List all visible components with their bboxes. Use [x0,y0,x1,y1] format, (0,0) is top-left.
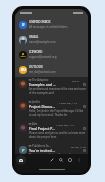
button[interactable]: Jenifer [15,99,88,121]
button[interactable]: Edit [48,156,55,163]
button[interactable]: P [15,143,88,165]
staticText: 4 days ago, 11:5 [56,123,75,126]
staticText: DU [21,68,26,72]
staticText: Please come and join us and let us know … [29,131,86,138]
staticText: All messages in unified folders [29,25,68,29]
staticText: Publishers Inv-A [32,144,51,148]
staticText: An architectural overview of the new and… [29,87,86,94]
staticText: Jenifer [32,100,41,104]
staticText: P [22,148,25,153]
staticText: OUTLOOK [29,65,43,69]
staticText: me_du@outlook.com [29,70,56,74]
staticText: UNIFIED INBOX [29,20,51,24]
button[interactable]: Account [66,156,73,163]
staticText: 08 Sep, 11:50 [71,145,86,148]
staticText: support@iceword.org [29,55,57,59]
button[interactable]: Search [57,156,64,163]
button[interactable]: DU [15,62,88,77]
staticText: Hello, I'm Jenifer the Project Manager. … [29,109,86,116]
staticText: Project Discussion [29,104,56,109]
button[interactable]: U [15,17,88,32]
staticText: The Adaptive [32,78,49,82]
button[interactable]: Alex [15,121,88,143]
staticText: Please come and join with our online eve… [29,153,83,157]
staticText: GMAIL [29,35,39,39]
staticText: name@example.com [29,40,56,44]
button[interactable]: More options [75,156,82,163]
staticText: 5 days ago, 11:5 [59,101,78,104]
button[interactable]: GMAIL [15,32,88,47]
staticText: You're invited. Join o... [29,148,56,153]
staticText: Final Project Proposal [29,126,56,131]
button[interactable]: Compose [16,155,26,165]
staticText: Examples and presentations [29,82,56,87]
staticText: U [22,23,25,27]
button[interactable]: The Adaptive [15,77,88,99]
staticText: ICEWORD [29,50,43,54]
button[interactable]: ICEWORD [15,47,88,62]
staticText: Alex [32,122,38,126]
staticText: Sep 27 [72,79,80,82]
